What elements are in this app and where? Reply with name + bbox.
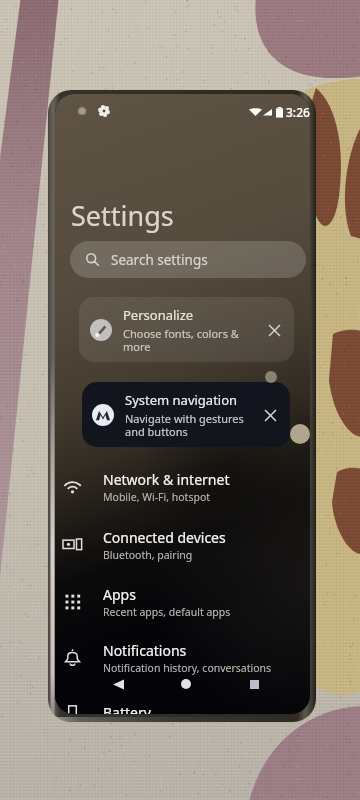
button[interactable]: Network & internet [63,464,309,509]
staticText: Bluetooth, pairing [103,548,193,562]
staticText: Navigate with gestures and buttons [125,411,244,439]
staticText: 3:26 [286,104,310,120]
button[interactable]: Connected devices [63,522,309,567]
button[interactable]: Back [106,673,130,695]
button[interactable]: Home [174,673,198,695]
staticText: Choose fonts, colors & more [123,326,239,354]
button[interactable]: Personalize [79,297,294,362]
button[interactable]: Dismiss System navigation [257,402,283,428]
staticText: Notification history, conversations [103,661,272,675]
staticText: System navigation [125,391,238,409]
button[interactable]: Search settings [70,241,306,278]
staticText: Settings [71,197,174,234]
staticText: Personalize [123,306,194,324]
staticText: Apps [103,585,136,604]
button[interactable]: System navigation [82,382,290,447]
button[interactable]: Apps [63,579,309,624]
staticText: Battery [103,703,151,714]
button[interactable]: Recent apps [242,673,266,695]
button[interactable]: Notifications [63,635,309,680]
staticText: Connected devices [103,528,226,547]
button[interactable]: Battery [63,690,309,714]
staticText: Network & internet [103,470,230,489]
staticText: Search settings [111,251,208,269]
staticText: Notifications [103,641,187,660]
staticText: Recent apps, default apps [103,605,231,619]
staticText: Mobile, Wi-Fi, hotspot [103,490,211,504]
button[interactable]: Dismiss Personalize [261,317,287,343]
